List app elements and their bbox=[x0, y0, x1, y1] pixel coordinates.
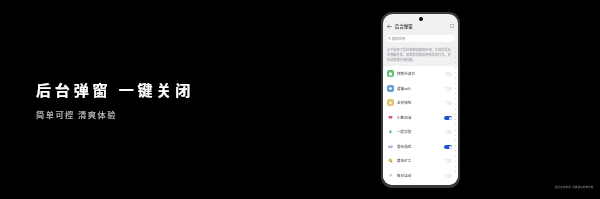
button[interactable]: 黄金矿工 bbox=[387, 153, 452, 168]
button[interactable]: 爱玩游戏 bbox=[387, 139, 452, 154]
button[interactable]: 关闭 bbox=[444, 101, 452, 105]
button[interactable]: 关闭 bbox=[444, 130, 452, 134]
button[interactable]: 返回 bbox=[387, 24, 392, 29]
staticText: 爱玩游戏 bbox=[397, 144, 412, 149]
button[interactable]: 更多选项 bbox=[450, 24, 454, 28]
staticText: 黄金矿工 bbox=[397, 158, 412, 163]
staticText: 蓝猫wifi bbox=[397, 86, 411, 91]
button[interactable]: 蓝猫wifi bbox=[387, 81, 452, 96]
button[interactable]: 开启 bbox=[444, 116, 452, 120]
staticText: 以下是有了后台弹窗权限的应用，关闭后将无法弹窗打扰，如果您发现应用有异常行为，可… bbox=[387, 47, 452, 62]
button[interactable]: 关闭 bbox=[444, 87, 452, 91]
button[interactable]: 关闭 bbox=[444, 72, 452, 76]
staticText: 金邻钱包 bbox=[397, 100, 412, 105]
staticText: 快快乐读书 bbox=[397, 71, 415, 76]
staticText: 后台弹窗 bbox=[395, 23, 413, 29]
button[interactable]: 快快乐读书 bbox=[387, 66, 452, 81]
staticText: 搜索应用 bbox=[392, 36, 406, 41]
button[interactable]: 搜索应用 bbox=[386, 35, 455, 42]
button[interactable]: 每日运动 bbox=[387, 168, 452, 183]
button[interactable]: 开启 bbox=[444, 145, 452, 149]
staticText: 一起学堂 bbox=[397, 129, 412, 134]
button[interactable]: 金邻钱包 bbox=[387, 95, 452, 110]
staticText: 简单可控 清爽体验 bbox=[36, 108, 117, 120]
button[interactable]: 关闭 bbox=[444, 159, 452, 163]
staticText: 每日运动 bbox=[397, 173, 412, 178]
staticText: 图片仅供参考 具体请以实物为准 bbox=[555, 185, 594, 189]
staticText: 后台弹窗 一键关闭 bbox=[36, 79, 195, 101]
button[interactable]: 关闭 bbox=[444, 174, 452, 178]
button[interactable]: 小熊加油 bbox=[387, 110, 452, 125]
button[interactable]: 一起学堂 bbox=[387, 124, 452, 139]
staticText: 小熊加油 bbox=[397, 115, 412, 120]
